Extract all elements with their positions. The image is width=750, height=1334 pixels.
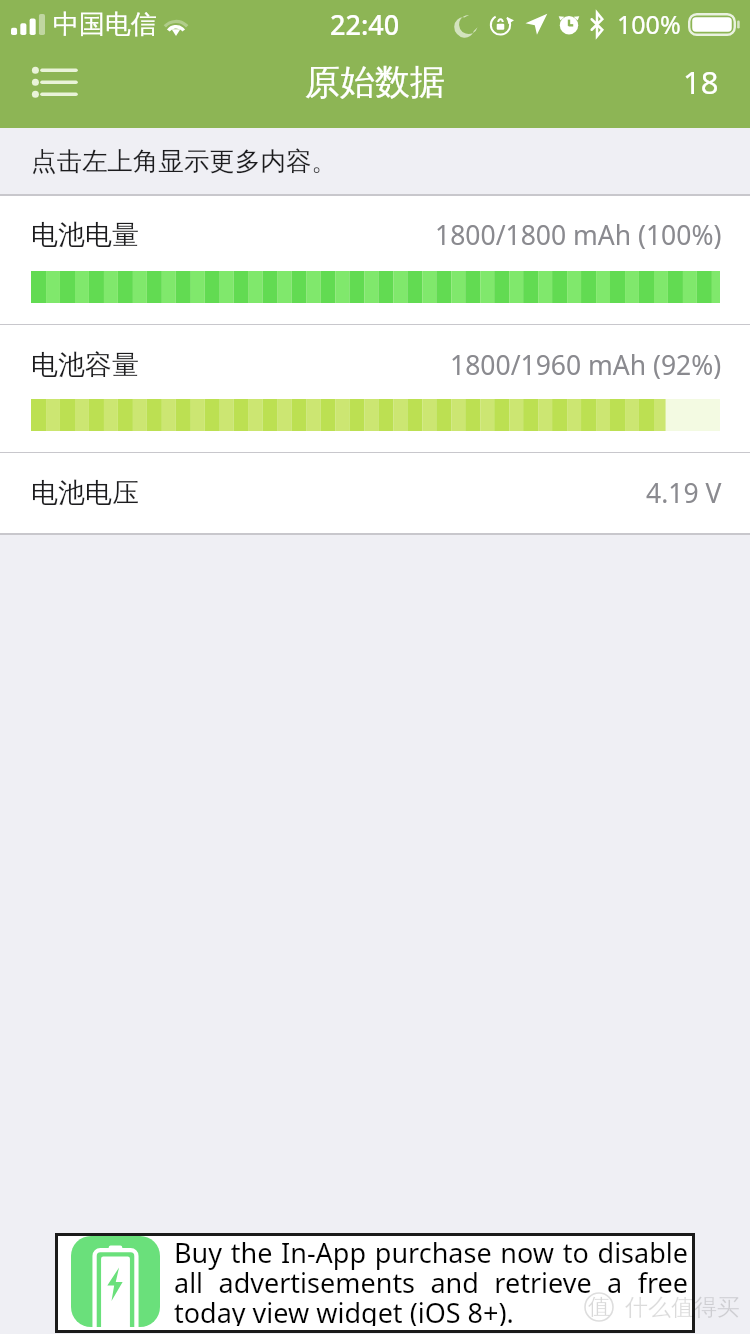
staticText: 点击左上角显示更多内容。: [31, 145, 337, 177]
staticText: 原始数据: [305, 60, 445, 104]
staticText: 电池容量: [31, 348, 139, 382]
staticText: 1800/1960 mAh (92%): [450, 347, 722, 383]
staticText: 值: [588, 1293, 610, 1321]
staticText: Buy the In-App purchase now to disable a…: [174, 1234, 688, 1326]
staticText: 100%: [617, 7, 681, 41]
button[interactable]: 电池容量: [0, 325, 750, 452]
staticText: 1800/1800 mAh (100%): [435, 217, 722, 253]
button[interactable]: 18: [675, 53, 727, 111]
staticText: 4.19 V: [646, 475, 722, 511]
staticText: 18: [683, 61, 719, 103]
button[interactable]: Buy the In-App purchase now to disable a…: [58, 1236, 692, 1330]
staticText: 22:40: [330, 6, 400, 43]
button[interactable]: 电池电量: [0, 196, 750, 324]
staticText: 电池电压: [31, 476, 139, 510]
button[interactable]: 电池电压: [0, 453, 750, 533]
staticText: 中国电信: [53, 8, 157, 41]
staticText: 什么值得买: [625, 1293, 740, 1322]
staticText: 电池电量: [31, 218, 139, 252]
button[interactable]: Menu: [20, 53, 88, 111]
